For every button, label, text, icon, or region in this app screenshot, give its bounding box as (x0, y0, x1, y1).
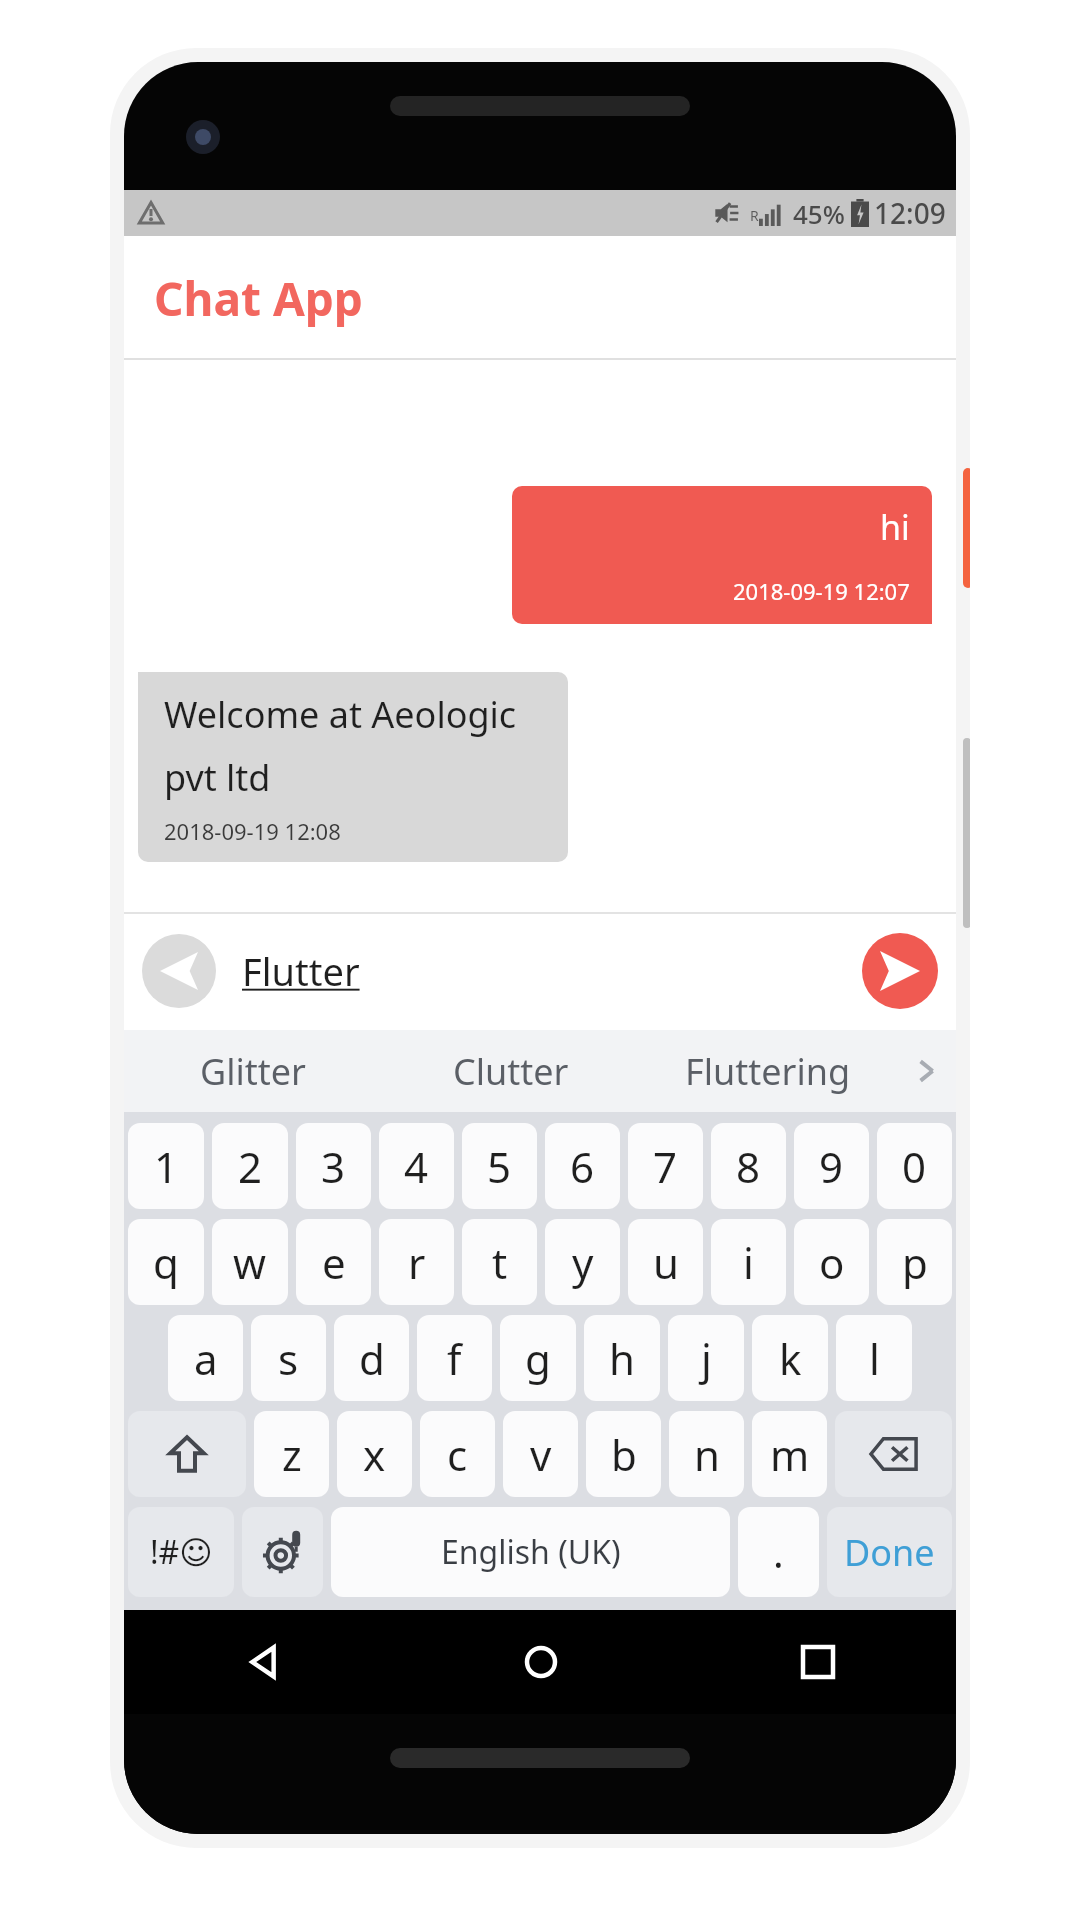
staticText: pvt ltd (164, 753, 271, 802)
button[interactable]: e (296, 1219, 371, 1305)
button[interactable]: . (738, 1507, 819, 1597)
staticText: q (153, 1234, 179, 1291)
button[interactable]: 0 (877, 1123, 952, 1209)
staticText: 5 (487, 1138, 512, 1195)
staticText: u (653, 1234, 679, 1291)
button[interactable]: 1 (128, 1123, 204, 1209)
staticText: 2018-09-19 12:08 (164, 816, 341, 846)
staticText: 12:09 (874, 194, 946, 232)
staticText: g (525, 1330, 551, 1387)
staticText: Clutter (453, 1047, 569, 1096)
staticText: Glitter (200, 1047, 306, 1096)
staticText: v (530, 1426, 552, 1483)
staticText: m (770, 1426, 810, 1483)
button[interactable]: c (420, 1411, 495, 1497)
button[interactable]: Done (827, 1507, 952, 1597)
button[interactable]: b (586, 1411, 661, 1497)
staticText: 1 (154, 1138, 179, 1195)
staticText: 2 (238, 1138, 263, 1195)
staticText: 6 (570, 1138, 595, 1195)
button[interactable]: Previous message (142, 934, 216, 1008)
button[interactable]: r (379, 1219, 454, 1305)
button[interactable]: m (752, 1411, 827, 1497)
button[interactable]: Fluttering (639, 1030, 896, 1112)
staticText: 2018-09-19 12:07 (733, 576, 910, 606)
button[interactable]: Backspace (835, 1411, 952, 1497)
button[interactable]: Back (124, 1610, 402, 1714)
staticText: e (322, 1234, 346, 1291)
button[interactable]: Home (402, 1610, 679, 1714)
staticText: r (408, 1234, 426, 1291)
staticText: hi (880, 504, 910, 550)
button[interactable]: s (251, 1315, 326, 1401)
staticText: Fluttering (685, 1047, 851, 1096)
button[interactable]: u (628, 1219, 703, 1305)
staticText: Done (844, 1528, 935, 1577)
staticText: R (750, 206, 759, 225)
button[interactable]: Recents (679, 1610, 956, 1714)
button[interactable]: l (836, 1315, 912, 1401)
staticText: c (447, 1426, 468, 1483)
button[interactable]: p (877, 1219, 952, 1305)
staticText: x (363, 1426, 386, 1483)
button[interactable]: Shift (128, 1411, 246, 1497)
button[interactable]: 4 (379, 1123, 454, 1209)
button[interactable]: t (462, 1219, 537, 1305)
button[interactable]: k (752, 1315, 828, 1401)
button[interactable]: 6 (545, 1123, 620, 1209)
button[interactable]: Flutter (242, 945, 360, 997)
staticText: y (572, 1234, 594, 1291)
staticText: 4 (404, 1138, 429, 1195)
staticText: 45% (793, 196, 845, 231)
staticText: 8 (736, 1138, 761, 1195)
button[interactable]: 7 (628, 1123, 703, 1209)
button[interactable]: d (334, 1315, 409, 1401)
staticText: s (278, 1330, 299, 1387)
button[interactable]: j (668, 1315, 744, 1401)
staticText: English (UK) (441, 1530, 621, 1574)
staticText: o (819, 1234, 845, 1291)
staticText: . (773, 1525, 784, 1579)
button[interactable]: w (212, 1219, 288, 1305)
button[interactable]: a (168, 1315, 243, 1401)
staticText: p (902, 1234, 928, 1291)
staticText: l (869, 1330, 880, 1387)
staticText: Welcome at Aeologic (164, 690, 517, 739)
button[interactable]: i (711, 1219, 786, 1305)
button[interactable]: x (337, 1411, 412, 1497)
button[interactable]: 2 (212, 1123, 288, 1209)
button[interactable]: g (500, 1315, 576, 1401)
button[interactable]: v (503, 1411, 578, 1497)
staticText: 9 (819, 1138, 844, 1195)
staticText: n (694, 1426, 720, 1483)
button[interactable]: hi (512, 486, 932, 624)
button[interactable]: y (545, 1219, 620, 1305)
button[interactable]: Settings and voice input (242, 1507, 323, 1597)
button[interactable]: Clutter (382, 1030, 639, 1112)
button[interactable]: Send (862, 933, 938, 1009)
button[interactable]: h (584, 1315, 660, 1401)
button[interactable]: q (128, 1219, 204, 1305)
staticText: d (359, 1330, 385, 1387)
button[interactable]: 3 (296, 1123, 371, 1209)
button[interactable]: Welcome at Aeologic (138, 672, 568, 862)
staticText: k (779, 1330, 802, 1387)
button[interactable]: n (669, 1411, 744, 1497)
staticText: w (233, 1234, 267, 1291)
staticText: a (194, 1330, 218, 1387)
button[interactable]: z (254, 1411, 329, 1497)
button[interactable]: !#☺ (128, 1507, 234, 1597)
button[interactable]: More suggestions (896, 1030, 956, 1112)
button[interactable]: English (UK) (331, 1507, 730, 1597)
button[interactable]: 9 (794, 1123, 869, 1209)
button[interactable]: f (417, 1315, 492, 1401)
staticText: h (609, 1330, 635, 1387)
staticText: j (701, 1330, 712, 1387)
button[interactable]: Glitter (124, 1030, 382, 1112)
button[interactable]: 5 (462, 1123, 537, 1209)
button[interactable]: o (794, 1219, 869, 1305)
staticText: b (611, 1426, 637, 1483)
staticText: z (282, 1426, 302, 1483)
staticText: 0 (902, 1138, 927, 1195)
button[interactable]: 8 (711, 1123, 786, 1209)
